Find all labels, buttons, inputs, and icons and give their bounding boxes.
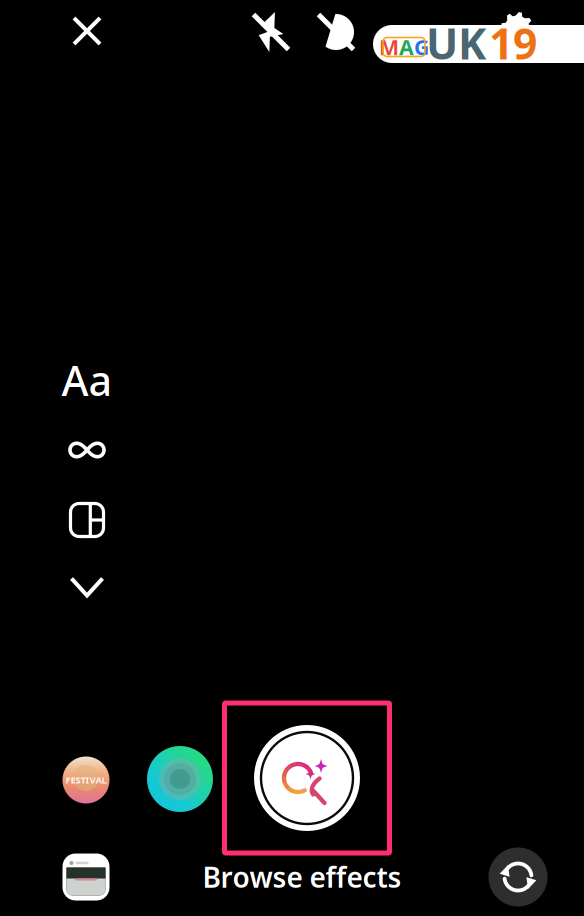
button[interactable]: Text xyxy=(58,351,116,409)
button[interactable]: Festival effect xyxy=(62,756,109,803)
button[interactable]: Boomerang xyxy=(58,421,116,479)
button[interactable]: Layout xyxy=(58,491,116,549)
staticText: UK xyxy=(426,15,486,71)
button[interactable]: Night mode off xyxy=(308,4,364,60)
staticText: M xyxy=(379,33,399,61)
button[interactable]: Effect xyxy=(147,746,213,812)
button[interactable]: Close xyxy=(58,2,116,60)
staticText: FESTIVAL xyxy=(65,774,106,786)
button[interactable]: Flash off xyxy=(243,4,299,60)
staticText: 19 xyxy=(489,15,537,71)
staticText: Browse effects xyxy=(202,858,401,896)
button[interactable]: Browse effects xyxy=(222,700,392,855)
staticText: G xyxy=(414,33,429,61)
staticText: A xyxy=(399,33,414,61)
button[interactable]: Flip camera xyxy=(488,847,547,906)
button[interactable]: Gallery xyxy=(62,853,109,900)
staticText: Aa xyxy=(61,353,112,407)
button[interactable]: More options xyxy=(58,558,116,616)
